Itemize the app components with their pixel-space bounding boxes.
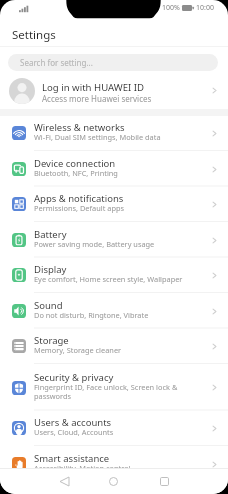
staticText: Apps & notifications [34, 192, 124, 205]
staticText: Fingerprint ID, Face unlock, Screen lock… [34, 382, 178, 402]
button[interactable]: Smart assistance [0, 446, 228, 482]
button[interactable]: Security & privacy [0, 364, 228, 411]
staticText: Sound [34, 299, 63, 312]
staticText: Permissions, Default apps [34, 203, 125, 213]
staticText: Security & privacy [34, 371, 114, 384]
staticText: Storage [34, 334, 69, 347]
staticText: 10:00 [196, 3, 214, 13]
button[interactable]: Log in with HUAWEI ID [0, 72, 228, 109]
staticText: Wireless & networks [34, 121, 125, 134]
staticText: Battery [34, 228, 67, 241]
staticText: Device connection [34, 157, 116, 170]
button[interactable]: Recent apps [152, 469, 177, 494]
staticText: Wi-Fi, Dual SIM settings, Mobile data [34, 132, 161, 142]
staticText: Memory, Storage cleaner [34, 345, 122, 355]
button[interactable]: Device connection [0, 151, 228, 187]
staticText: Eye comfort, Home screen style, Wallpape… [34, 274, 183, 284]
button[interactable]: Battery [0, 222, 228, 258]
button[interactable]: Home [101, 469, 126, 494]
staticText: Settings [12, 27, 56, 43]
staticText: 100% [162, 3, 180, 13]
staticText: Access more Huawei services [42, 93, 152, 104]
staticText: Do not disturb, Ringtone, Vibrate [34, 310, 149, 320]
button[interactable]: Sound [0, 293, 228, 329]
button[interactable]: Display [0, 257, 228, 293]
button[interactable]: Back [52, 469, 77, 494]
staticText: Display [34, 263, 67, 276]
staticText: Accessibility, Motion control [34, 463, 131, 473]
button[interactable]: Search for setting... [8, 54, 218, 71]
staticText: Power saving mode, Battery usage [34, 239, 155, 249]
button[interactable]: Storage [0, 328, 228, 364]
staticText: Smart assistance [34, 452, 110, 465]
staticText: Log in with HUAWEI ID [42, 81, 145, 94]
button[interactable]: Apps & notifications [0, 186, 228, 222]
staticText: Users, Cloud, Accounts [34, 427, 114, 437]
button[interactable]: Wireless & networks [0, 115, 228, 151]
button[interactable]: Users & accounts [0, 410, 228, 446]
staticText: Search for setting... [20, 57, 93, 68]
staticText: Users & accounts [34, 416, 112, 429]
staticText: Bluetooth, NFC, Printing [34, 168, 118, 178]
